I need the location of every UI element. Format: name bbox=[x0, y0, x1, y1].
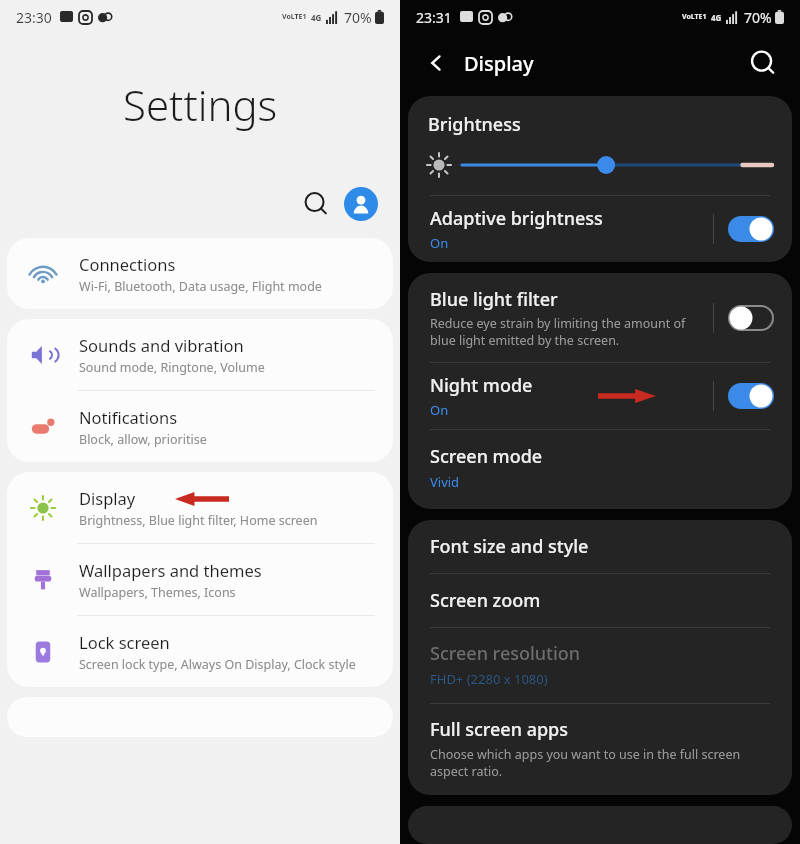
staticText: Sounds and vibration bbox=[79, 334, 244, 356]
button[interactable]: Account bbox=[344, 187, 378, 221]
staticText: Choose which apps you want to use in the… bbox=[430, 746, 741, 779]
button[interactable]: Display bbox=[7, 472, 393, 543]
staticText: 70% bbox=[344, 8, 372, 27]
staticText: Sound mode, Ringtone, Volume bbox=[79, 359, 265, 376]
staticText: 23:30 bbox=[16, 8, 52, 27]
button[interactable]: Screen resolution bbox=[408, 628, 792, 703]
button[interactable]: Search settings bbox=[296, 184, 336, 224]
staticText: Night mode bbox=[430, 373, 533, 398]
staticText: Wallpapers, Themes, Icons bbox=[79, 584, 236, 601]
button[interactable]: Search bbox=[744, 44, 782, 82]
staticText: Screen lock type, Always On Display, Clo… bbox=[79, 656, 356, 673]
button[interactable]: Adaptive brightness bbox=[408, 196, 792, 262]
button[interactable]: Font size and style bbox=[408, 520, 792, 573]
staticText: Wallpapers and themes bbox=[79, 559, 262, 581]
staticText: 70% bbox=[744, 8, 772, 27]
button[interactable]: Night mode bbox=[408, 363, 792, 429]
staticText: VoLTE1 bbox=[282, 12, 307, 22]
staticText: Adaptive brightness bbox=[430, 206, 603, 231]
button[interactable]: Lock screen bbox=[7, 616, 393, 687]
staticText: Display bbox=[79, 487, 136, 509]
staticText: Connections bbox=[79, 253, 176, 275]
button[interactable]: Blue light filter bbox=[408, 273, 792, 362]
staticText: 4G bbox=[711, 12, 722, 23]
staticText: 23:31 bbox=[416, 8, 452, 27]
button[interactable]: Back bbox=[418, 45, 454, 81]
staticText: Settings bbox=[123, 76, 278, 133]
button[interactable]: Toggle on bbox=[728, 383, 774, 409]
staticText: Brightness, Blue light filter, Home scre… bbox=[79, 512, 318, 529]
staticText: Screen mode bbox=[430, 444, 543, 469]
button[interactable]: Wallpapers and themes bbox=[7, 544, 393, 615]
button[interactable]: Sounds and vibration bbox=[7, 319, 393, 390]
button[interactable]: Brightness slider bbox=[462, 153, 772, 177]
button[interactable]: Toggle on bbox=[728, 216, 774, 242]
staticText: Wi-Fi, Bluetooth, Data usage, Flight mod… bbox=[79, 278, 322, 295]
button[interactable]: Connections bbox=[7, 238, 393, 309]
staticText: Font size and style bbox=[430, 534, 589, 559]
staticText: Full screen apps bbox=[430, 717, 569, 742]
staticText: Notifications bbox=[79, 406, 178, 428]
staticText: Screen resolution bbox=[430, 641, 581, 666]
staticText: FHD+ (2280 x 1080) bbox=[430, 670, 548, 688]
staticText: Vivid bbox=[430, 473, 460, 491]
button[interactable]: Notifications bbox=[7, 391, 393, 462]
staticText: Screen zoom bbox=[430, 588, 541, 613]
staticText: Brightness bbox=[428, 112, 521, 137]
staticText: VoLTE1 bbox=[682, 12, 707, 22]
staticText: On bbox=[430, 234, 449, 252]
button[interactable]: Full screen apps bbox=[408, 704, 792, 795]
staticText: 4G bbox=[311, 12, 322, 23]
staticText: Reduce eye strain by limiting the amount… bbox=[430, 315, 686, 348]
staticText: Lock screen bbox=[79, 631, 170, 653]
button[interactable]: Screen zoom bbox=[408, 574, 792, 627]
staticText: Blue light filter bbox=[430, 287, 558, 312]
staticText: Block, allow, prioritise bbox=[79, 431, 207, 448]
button[interactable]: Toggle off bbox=[728, 305, 774, 331]
staticText: Display bbox=[464, 50, 534, 77]
button[interactable]: Screen mode bbox=[408, 430, 792, 509]
staticText: On bbox=[430, 401, 449, 419]
